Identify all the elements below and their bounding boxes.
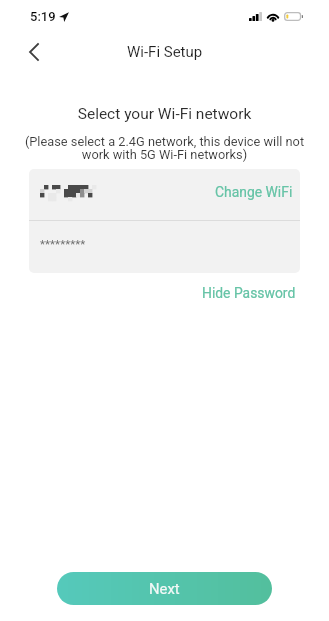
staticText: Next bbox=[149, 580, 180, 597]
staticText: Hide Password bbox=[202, 285, 296, 301]
button[interactable]: Change WiFi bbox=[29, 169, 300, 220]
staticText: Select your Wi-Fi network bbox=[0, 105, 329, 123]
staticText: Wi-Fi Setup bbox=[127, 43, 203, 61]
button[interactable]: ********* bbox=[29, 221, 300, 273]
staticText: (Please select a 2.4G network, this devi… bbox=[20, 134, 309, 162]
staticText: Change WiFi bbox=[215, 184, 293, 200]
staticText: ********* bbox=[40, 237, 86, 251]
button[interactable]: Next bbox=[57, 572, 272, 605]
staticText: 5:19 bbox=[30, 9, 56, 24]
button[interactable]: Hide Password bbox=[202, 282, 296, 304]
button[interactable]: Back bbox=[17, 35, 51, 69]
